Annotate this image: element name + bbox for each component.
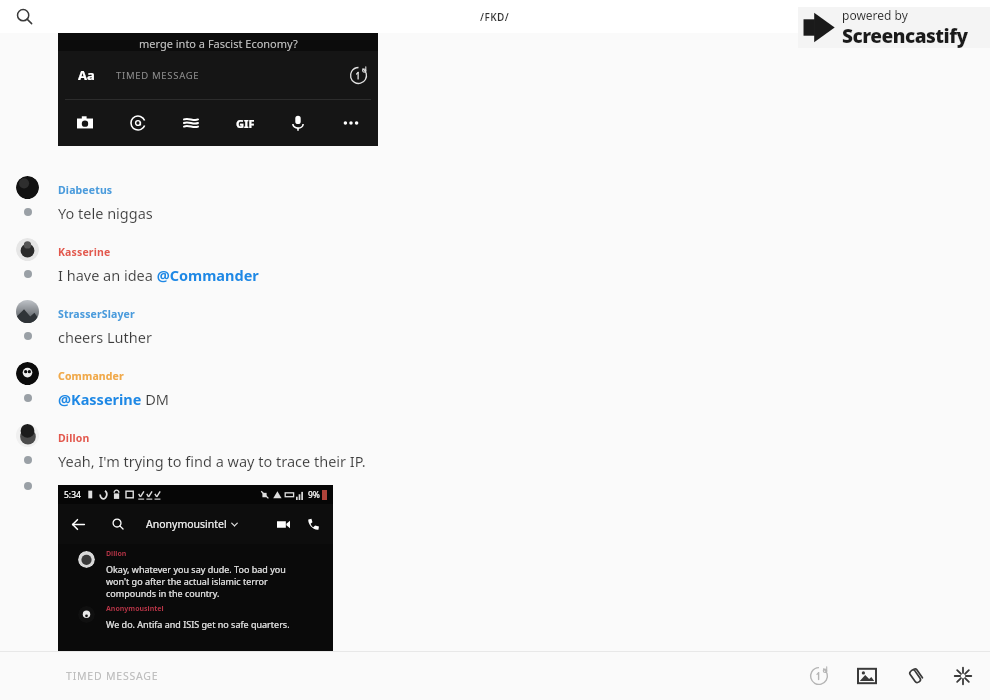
- button[interactable]: Message timer 1 day: [800, 657, 838, 695]
- button[interactable]: More options: [338, 110, 364, 136]
- staticText: Aa: [78, 66, 95, 84]
- button[interactable]: Kasserine: [0, 237, 990, 299]
- button[interactable]: Call: [926, 2, 956, 32]
- staticText: I have an idea @Commander: [58, 265, 259, 285]
- staticText: GIF: [236, 116, 255, 131]
- staticText: Dillon: [58, 431, 90, 445]
- staticText: Screencastify: [842, 23, 968, 48]
- staticText: 9%: [308, 489, 320, 501]
- staticText: won't go after the actual islamic terror: [106, 575, 268, 587]
- staticText: @Kasserine DM: [58, 389, 169, 409]
- button[interactable]: StrasserSlayer: [0, 299, 990, 361]
- button[interactable]: Search: [8, 0, 41, 33]
- button[interactable]: Anonymousintel: [146, 517, 238, 531]
- staticText: TIMED MESSAGE: [66, 669, 159, 683]
- button[interactable]: Commander: [0, 361, 990, 423]
- button[interactable]: Shared screenshot: [58, 33, 378, 146]
- button[interactable]: Effects: [944, 657, 982, 695]
- button[interactable]: Voice call: [301, 512, 325, 536]
- button[interactable]: GIF: [232, 110, 258, 136]
- button[interactable]: Camera: [72, 110, 98, 136]
- staticText: compounds in the country.: [106, 587, 220, 599]
- button[interactable]: Diabeetus: [0, 175, 990, 237]
- button[interactable]: Dillon: [58, 549, 333, 599]
- button[interactable]: Send image: [848, 657, 886, 695]
- staticText: Anonymousintel: [146, 517, 227, 531]
- staticText: Anonymousintel: [106, 604, 164, 614]
- button[interactable]: Shared chat screenshot: [58, 485, 333, 651]
- button[interactable]: Attach file: [896, 657, 934, 695]
- button[interactable]: Dillon: [0, 423, 990, 485]
- staticText: Okay, whatever you say dude. Too bad you: [106, 563, 286, 575]
- button[interactable]: Powered by Screencastify: [798, 7, 990, 48]
- button[interactable]: Stickers: [178, 110, 204, 136]
- staticText: We do. Antifa and ISIS get no safe quart…: [106, 618, 290, 630]
- staticText: Commander: [58, 369, 124, 383]
- button[interactable]: Anonymousintel: [58, 604, 333, 630]
- staticText: StrasserSlayer: [58, 307, 135, 321]
- staticText: /FKD/: [480, 10, 510, 24]
- staticText: Yo tele niggas: [58, 203, 153, 223]
- staticText: Yeah, I'm trying to find a way to trace …: [58, 451, 366, 471]
- staticText: 5:34: [64, 489, 81, 501]
- button[interactable]: Search: [106, 512, 130, 536]
- button[interactable]: Info: [956, 2, 986, 32]
- staticText: powered by: [842, 7, 908, 23]
- staticText: cheers Luther: [58, 327, 152, 347]
- button[interactable]: Mention: [125, 110, 151, 136]
- button[interactable]: Voice message: [285, 110, 311, 136]
- staticText: Kasserine: [58, 245, 111, 259]
- staticText: Dillon: [106, 549, 127, 559]
- staticText: merge into a Fascist Economy?: [139, 36, 298, 51]
- button[interactable]: Back: [66, 512, 90, 536]
- staticText: Diabeetus: [58, 183, 113, 197]
- button[interactable]: Video call: [271, 512, 295, 536]
- staticText: TIMED MESSAGE: [116, 69, 200, 82]
